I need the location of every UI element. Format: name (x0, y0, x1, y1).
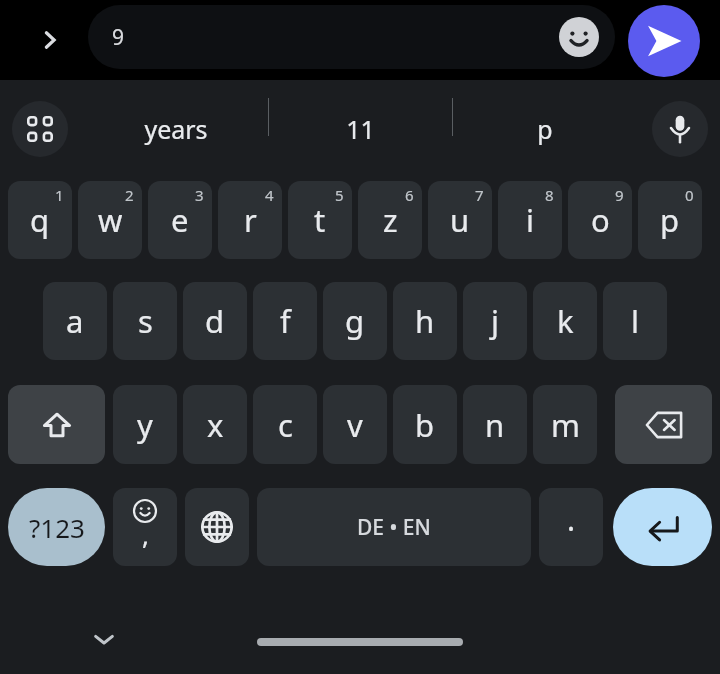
staticText: x (207, 404, 224, 446)
staticText: DE • EN (357, 513, 431, 542)
button[interactable]: Voice input (652, 101, 708, 157)
staticText: i (526, 199, 534, 241)
staticText: y (137, 404, 153, 446)
button[interactable]: ?123 (8, 488, 105, 566)
staticText: 0 (685, 185, 694, 205)
staticText: 9 (112, 23, 125, 52)
button[interactable]: DE • EN (257, 488, 531, 566)
button[interactable]: j (463, 282, 527, 360)
staticText: s (138, 300, 153, 342)
staticText: 8 (545, 185, 554, 205)
staticText: h (415, 300, 435, 342)
staticText: 7 (475, 185, 484, 205)
button[interactable]: c (253, 385, 317, 464)
staticText: l (631, 300, 639, 342)
staticText: p (537, 112, 553, 146)
button[interactable]: p (453, 98, 636, 160)
button[interactable]: z (358, 181, 422, 259)
staticText: p (660, 199, 680, 241)
button[interactable]: Enter (613, 488, 712, 566)
button[interactable]: v (323, 385, 387, 464)
button[interactable]: years (84, 98, 268, 160)
staticText: 2 (125, 185, 134, 205)
staticText: 1 (55, 185, 64, 205)
button[interactable]: f (253, 282, 317, 360)
button[interactable]: i (498, 181, 562, 259)
button[interactable]: Change language (185, 488, 249, 566)
button[interactable]: g (323, 282, 387, 360)
staticText: n (485, 404, 505, 446)
staticText: years (144, 112, 208, 146)
staticText: o (591, 199, 610, 241)
button[interactable]: Expand (22, 12, 78, 68)
button[interactable]: Send (628, 5, 700, 77)
button[interactable]: n (463, 385, 527, 464)
button[interactable]: 11 (269, 98, 452, 160)
button[interactable]: p (638, 181, 702, 259)
button[interactable]: t (288, 181, 352, 259)
button[interactable]: s (113, 282, 177, 360)
staticText: r (244, 199, 257, 241)
staticText: 5 (335, 185, 344, 205)
button[interactable]: Toolbar (12, 101, 68, 157)
staticText: a (66, 300, 84, 342)
button[interactable]: Shift (8, 385, 105, 464)
staticText: d (205, 300, 225, 342)
button[interactable]: a (43, 282, 107, 360)
staticText: g (345, 300, 365, 342)
button[interactable]: Emoji and comma (113, 488, 177, 566)
button[interactable]: 9 (88, 5, 615, 69)
staticText: b (415, 404, 435, 446)
button[interactable]: h (393, 282, 457, 360)
button[interactable]: k (533, 282, 597, 360)
staticText: q (30, 199, 50, 241)
staticText: 4 (265, 185, 274, 205)
staticText: w (98, 199, 123, 241)
button[interactable]: d (183, 282, 247, 360)
button[interactable]: u (428, 181, 492, 259)
staticText: z (383, 199, 398, 241)
button[interactable]: m (533, 385, 597, 464)
staticText: f (280, 300, 291, 342)
staticText: j (491, 300, 499, 342)
button[interactable]: Backspace (615, 385, 712, 464)
staticText: c (278, 404, 293, 446)
staticText: 9 (615, 185, 624, 205)
staticText: 6 (405, 185, 414, 205)
button[interactable]: r (218, 181, 282, 259)
staticText: v (347, 404, 363, 446)
button[interactable]: x (183, 385, 247, 464)
button[interactable]: Emoji (557, 15, 601, 59)
staticText: u (450, 199, 470, 241)
staticText: 3 (195, 185, 204, 205)
button[interactable]: b (393, 385, 457, 464)
button[interactable]: . (539, 488, 603, 566)
staticText: , (142, 517, 149, 552)
button[interactable]: l (603, 282, 667, 360)
button[interactable]: e (148, 181, 212, 259)
button[interactable]: Hide keyboard (78, 613, 130, 665)
staticText: 11 (346, 112, 375, 146)
button[interactable]: y (113, 385, 177, 464)
staticText: . (567, 499, 576, 540)
staticText: k (557, 300, 574, 342)
staticText: t (314, 199, 326, 241)
staticText: ?123 (29, 510, 85, 545)
button[interactable]: w (78, 181, 142, 259)
button[interactable]: o (568, 181, 632, 259)
staticText: m (551, 404, 580, 446)
button[interactable]: q (8, 181, 72, 259)
staticText: e (171, 199, 189, 241)
